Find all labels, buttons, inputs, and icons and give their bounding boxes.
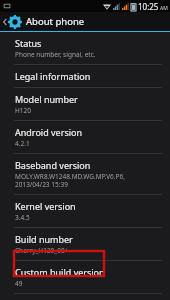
- button[interactable]: Android version: [0, 121, 170, 153]
- staticText: Custom build version: [15, 266, 105, 278]
- staticText: Kernel version: [15, 200, 76, 212]
- staticText: 3.4.5: [15, 213, 30, 222]
- button[interactable]: Build number: [0, 228, 170, 260]
- staticText: Model number: [15, 93, 78, 105]
- staticText: AM: [160, 5, 168, 12]
- button[interactable]: Baseband version: [0, 154, 170, 194]
- staticText: 4.2.1: [15, 139, 30, 148]
- staticText: Baseband version: [15, 159, 91, 171]
- staticText: About phone: [26, 15, 85, 28]
- button[interactable]: Status: [0, 32, 170, 64]
- button[interactable]: Model number: [0, 88, 170, 120]
- staticText: Phone number, signal, etc.: [15, 50, 96, 59]
- staticText: Cherry_H120_08+: [15, 246, 69, 255]
- button[interactable]: Custom build version: [0, 261, 170, 293]
- staticText: Build number: [15, 233, 73, 245]
- staticText: 10:25: [138, 1, 159, 12]
- button[interactable]: Up, About phone: [0, 12, 170, 31]
- staticText: MOLY.WR8.W1248.MD.WG.MP.V6.P6, 2013/04/2…: [15, 172, 125, 189]
- staticText: Android version: [15, 126, 83, 138]
- staticText: H120: [15, 106, 31, 115]
- staticText: 49: [15, 279, 23, 288]
- staticText: Status: [15, 37, 42, 49]
- button[interactable]: Kernel version: [0, 195, 170, 227]
- button[interactable]: Legal information: [0, 65, 170, 87]
- staticText: Legal information: [15, 70, 91, 82]
